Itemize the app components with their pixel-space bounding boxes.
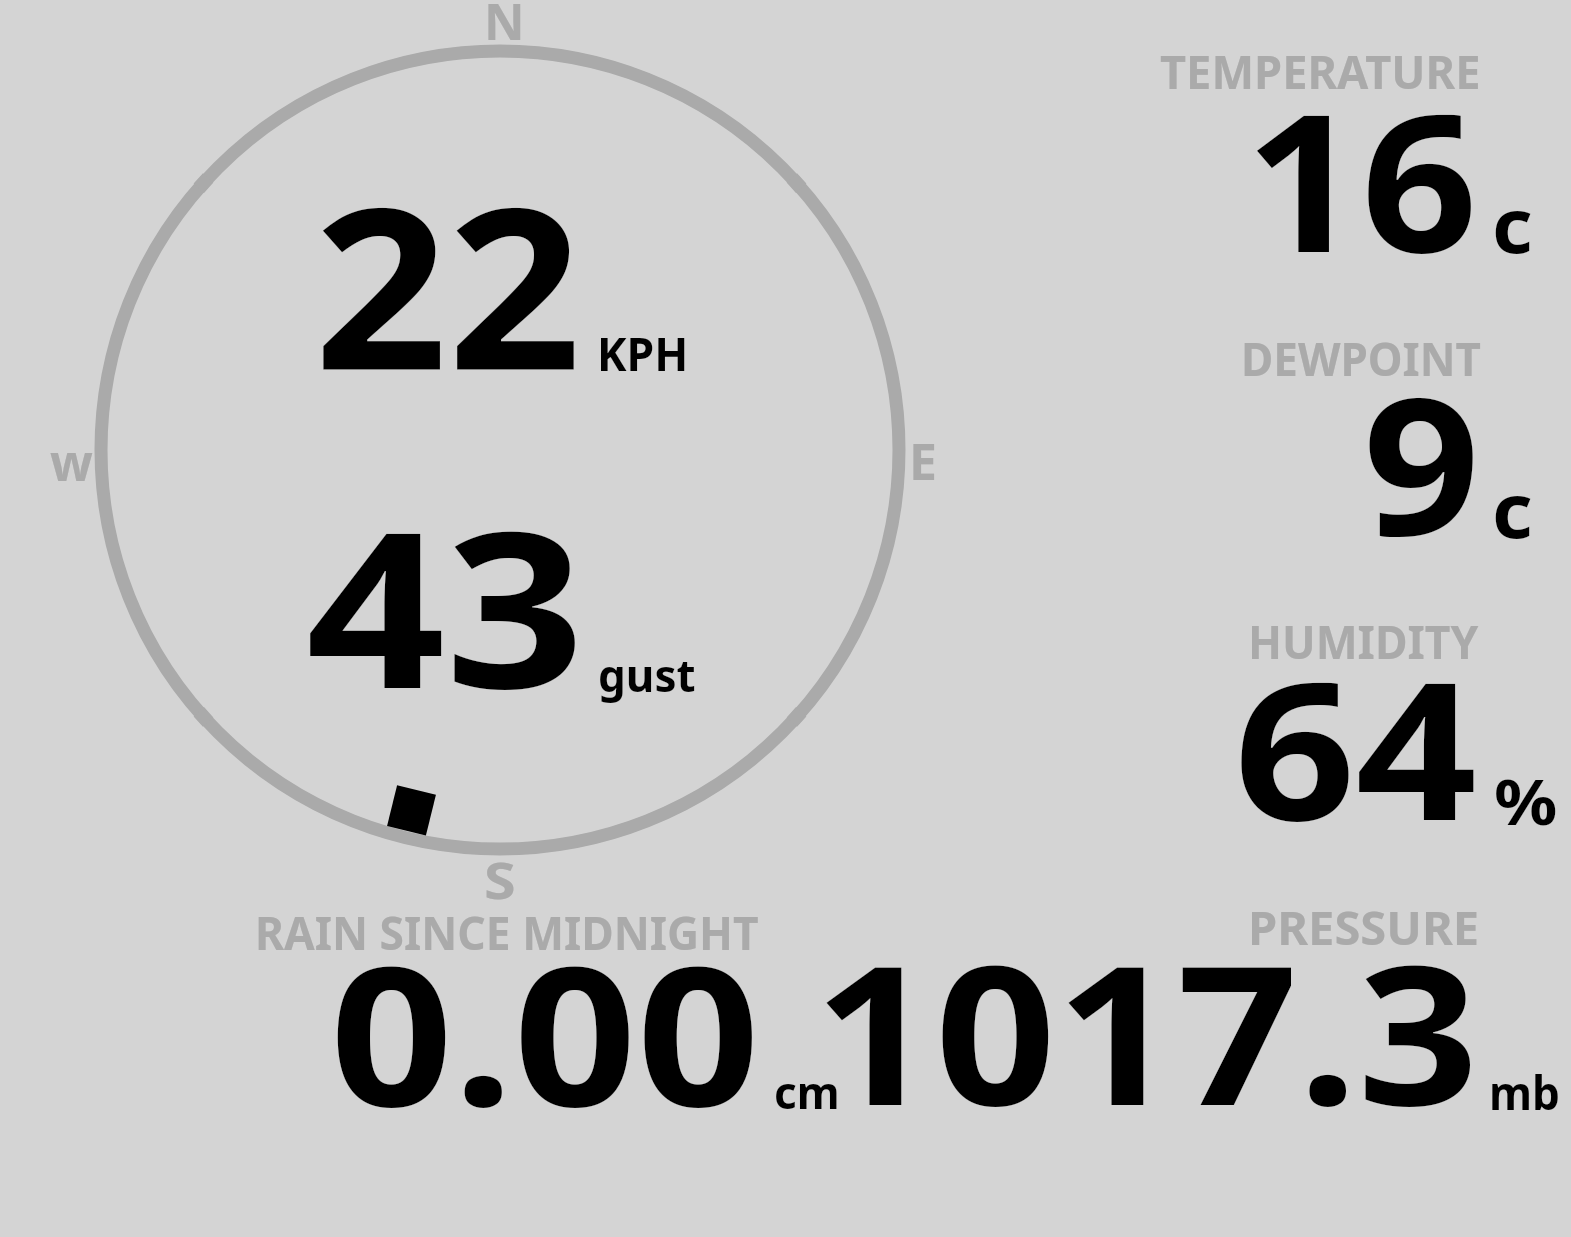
staticText: 0.00 bbox=[330, 901, 760, 1163]
staticText: 1017.3 bbox=[814, 900, 1480, 1162]
button[interactable]: Pressure 1017.3 mb bbox=[870, 890, 1570, 1130]
staticText: N bbox=[484, 0, 525, 55]
button[interactable]: Wind speed 22 KPH, gust 43, direction so… bbox=[80, 30, 930, 880]
staticText: TEMPERATURE bbox=[1160, 40, 1481, 103]
staticText: S bbox=[484, 846, 516, 914]
staticText: c bbox=[1492, 458, 1533, 560]
staticText: 64 bbox=[1234, 617, 1478, 876]
staticText: DEWPOINT bbox=[1241, 327, 1481, 390]
staticText: mb bbox=[1489, 1060, 1560, 1124]
staticText: w bbox=[50, 428, 93, 496]
staticText: % bbox=[1494, 758, 1558, 844]
staticText: PRESSURE bbox=[1248, 896, 1479, 959]
button[interactable]: Temperature 16 degrees Celsius bbox=[1100, 30, 1571, 300]
staticText: gust bbox=[598, 645, 696, 705]
button[interactable]: Humidity 64 percent bbox=[1100, 590, 1571, 870]
staticText: 16 bbox=[1245, 49, 1478, 308]
staticText: HUMIDITY bbox=[1248, 610, 1479, 673]
staticText: c bbox=[1492, 173, 1533, 275]
button[interactable]: Rain since midnight 0.00 cm bbox=[240, 890, 860, 1130]
staticText: 9 bbox=[1363, 331, 1481, 591]
staticText: RAIN SINCE MIDNIGHT bbox=[255, 901, 759, 964]
staticText: 22 bbox=[314, 132, 581, 434]
staticText: 43 bbox=[306, 458, 585, 751]
button[interactable]: Dewpoint 9 degrees Celsius bbox=[1100, 310, 1571, 570]
staticText: cm bbox=[774, 1061, 841, 1122]
staticText: KPH bbox=[597, 322, 689, 385]
staticText: E bbox=[909, 427, 937, 495]
